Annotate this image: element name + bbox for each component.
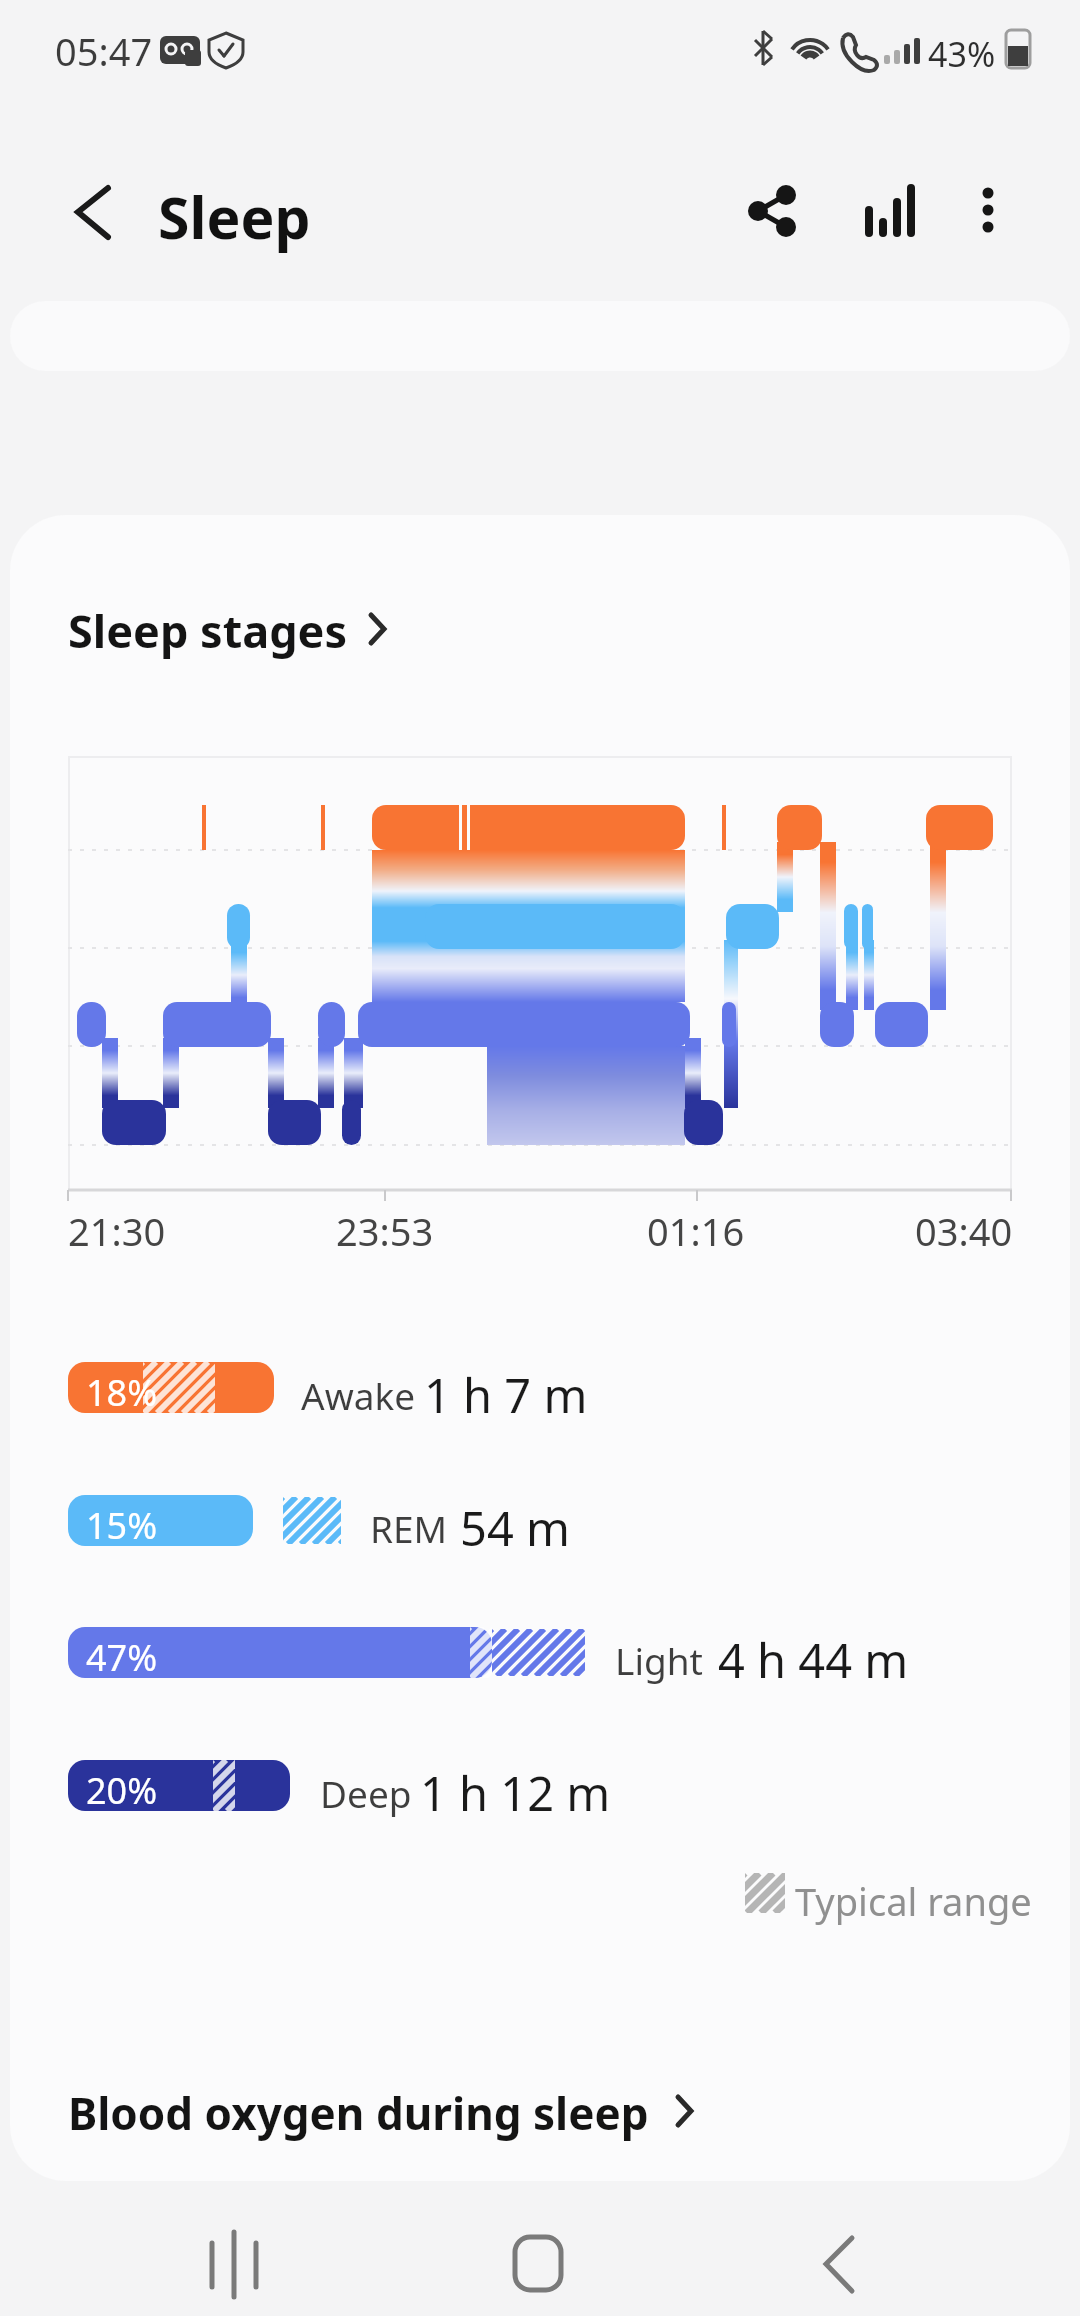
staticText: 54 m xyxy=(460,1496,570,1548)
staticText: 18% xyxy=(86,1368,158,1417)
staticText: REM xyxy=(370,1503,448,1553)
staticText: Typical range xyxy=(795,1875,1032,1927)
staticText: 1 h 12 m xyxy=(420,1761,611,1813)
staticText: 05:47 xyxy=(55,25,153,77)
button[interactable] xyxy=(950,170,1030,260)
staticText: 21:30 xyxy=(68,1205,166,1257)
button[interactable] xyxy=(170,2225,300,2305)
button[interactable] xyxy=(735,170,820,260)
staticText: Blood oxygen during sleep xyxy=(68,2083,649,2143)
staticText: 1 h 7 m xyxy=(424,1363,588,1415)
staticText: Deep xyxy=(320,1768,412,1818)
staticText: Light xyxy=(615,1635,703,1685)
button[interactable] xyxy=(775,2225,905,2305)
staticText: 47% xyxy=(86,1633,158,1682)
staticText: 20% xyxy=(86,1766,158,1815)
button[interactable]: Blood oxygen during sleep xyxy=(68,2083,688,2153)
button[interactable]: 20% xyxy=(68,1760,1028,1812)
button[interactable]: 15% xyxy=(68,1495,1028,1547)
button[interactable]: Sleep stages xyxy=(68,600,398,675)
button[interactable] xyxy=(845,170,930,260)
button[interactable]: 47% xyxy=(68,1627,1028,1679)
staticText: 4 h 44 m xyxy=(718,1628,909,1680)
button[interactable]: 18% xyxy=(68,1362,1028,1414)
staticText: Awake xyxy=(301,1370,416,1420)
staticText: Sleep stages xyxy=(68,600,348,661)
staticText: Sleep xyxy=(158,178,311,256)
button[interactable] xyxy=(50,175,140,255)
staticText: 23:53 xyxy=(336,1205,434,1257)
staticText: 43% xyxy=(928,31,996,77)
button[interactable] xyxy=(475,2225,605,2305)
staticText: 15% xyxy=(86,1501,158,1550)
staticText: 01:16 xyxy=(647,1205,745,1257)
staticText: 03:40 xyxy=(915,1205,1013,1257)
